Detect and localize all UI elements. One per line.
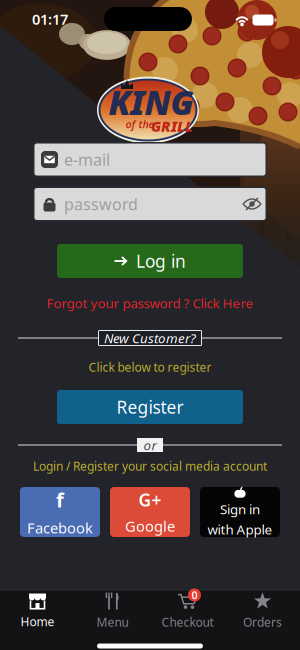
button[interactable]: password [33, 186, 267, 221]
staticText: Log in [136, 249, 186, 272]
staticText: of the [125, 117, 154, 131]
staticText: with Apple [207, 520, 272, 538]
staticText: Facebook [27, 518, 93, 537]
button[interactable]: 0 [150, 587, 224, 635]
button[interactable]: Orders [225, 587, 299, 635]
staticText: Login / Register your social media accou… [33, 458, 267, 474]
staticText: Menu [96, 614, 128, 630]
staticText: Orders [243, 614, 282, 630]
button[interactable]: f [20, 487, 100, 537]
staticText: Register [116, 395, 183, 418]
staticText: Checkout [161, 614, 213, 630]
button[interactable]: Show password [242, 197, 262, 211]
button[interactable]: e-mail [33, 142, 267, 177]
staticText: e-mail [64, 149, 110, 170]
button[interactable]: Home [0, 587, 74, 635]
staticText: Google [125, 516, 175, 536]
staticText: GRILL [151, 116, 193, 136]
staticText: f [56, 486, 64, 513]
staticText: 0 [191, 588, 197, 602]
button[interactable]: Menu [75, 587, 149, 635]
staticText: KING [108, 80, 193, 124]
staticText: 01:17 [32, 9, 68, 29]
button[interactable]: Register [57, 390, 243, 424]
button[interactable]: Sign in [200, 487, 280, 537]
staticText: Sign in [220, 500, 260, 518]
button[interactable]: G+ [110, 487, 190, 537]
staticText: New Customer? [104, 329, 196, 347]
staticText: or [143, 436, 156, 454]
staticText: G+ [138, 488, 161, 511]
staticText: Forgot your password ? Click Here [46, 294, 253, 312]
button[interactable]: Log in [57, 244, 243, 278]
staticText: Click below to register [88, 359, 211, 375]
button[interactable]: Forgot your password ? Click Here [46, 294, 253, 312]
staticText: password [64, 193, 138, 215]
staticText: Home [20, 613, 54, 629]
